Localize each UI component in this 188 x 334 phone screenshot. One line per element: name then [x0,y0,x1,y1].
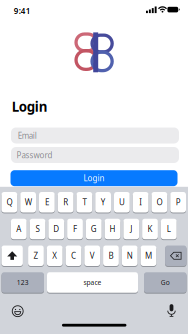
button[interactable]: L [161,218,177,240]
button[interactable]: I [133,191,149,213]
staticText: Y [101,197,106,207]
button[interactable]: Y [95,191,111,213]
staticText: W [25,197,32,207]
button[interactable]: N [122,245,138,266]
staticText: Email [18,130,37,141]
button[interactable]: J [123,218,139,240]
staticText: X [52,250,57,261]
staticText: 9:41 [14,6,31,16]
button[interactable]: G [86,218,102,240]
button[interactable]: Q [1,191,17,213]
staticText: D [53,224,59,234]
staticText: G [91,224,97,234]
staticText: N [127,250,133,261]
staticText: C [71,250,76,261]
staticText: U [119,197,125,207]
button[interactable]: Z [28,245,44,266]
staticText: P [176,197,181,207]
button[interactable]: V [84,245,100,266]
button[interactable]: Email [11,127,179,143]
staticText: 123 [17,278,29,287]
button[interactable]: Password [11,147,179,163]
button[interactable]: S [30,218,45,240]
staticText: O [156,197,162,207]
button[interactable]: O [151,191,167,213]
staticText: Q [6,197,12,207]
staticText: R [63,197,68,207]
staticText: L [167,224,171,234]
button[interactable]: C [66,245,81,266]
staticText: Login [12,98,48,115]
button[interactable]: P [170,191,186,213]
button[interactable]: W [20,191,36,213]
button[interactable]: A [11,218,27,240]
staticText: Login [83,173,104,183]
staticText: M [145,250,152,261]
button[interactable]: 123 [1,272,44,293]
button[interactable]: H [105,218,120,240]
staticText: H [109,224,115,234]
staticText: space [83,278,101,287]
staticText: A [16,224,21,234]
button[interactable]: X [47,245,63,266]
staticText: K [147,224,152,234]
staticText: Password [16,150,52,160]
staticText: F [73,224,77,234]
staticText: T [82,197,86,207]
staticText: Go [161,278,170,287]
button[interactable]: Shift [1,245,23,266]
button[interactable]: space [47,272,138,293]
staticText: B [108,250,113,261]
button[interactable]: R [58,191,74,213]
staticText: E [45,197,49,207]
staticText: S [35,224,39,234]
button[interactable]: U [114,191,130,213]
button[interactable]: Login [10,170,177,186]
button[interactable]: Delete [165,245,186,266]
button[interactable]: Go [144,272,186,293]
button[interactable]: Emoji [12,305,24,317]
staticText: Z [33,250,38,261]
button[interactable]: E [39,191,55,213]
staticText: I [139,197,142,207]
staticText: J [130,224,132,234]
staticText: V [90,250,95,261]
button[interactable]: T [76,191,92,213]
button[interactable]: B [103,245,119,266]
button[interactable]: K [142,218,158,240]
button[interactable]: D [48,218,64,240]
button[interactable]: F [67,218,83,240]
button[interactable]: M [141,245,156,266]
button[interactable]: Dictation [167,304,176,317]
